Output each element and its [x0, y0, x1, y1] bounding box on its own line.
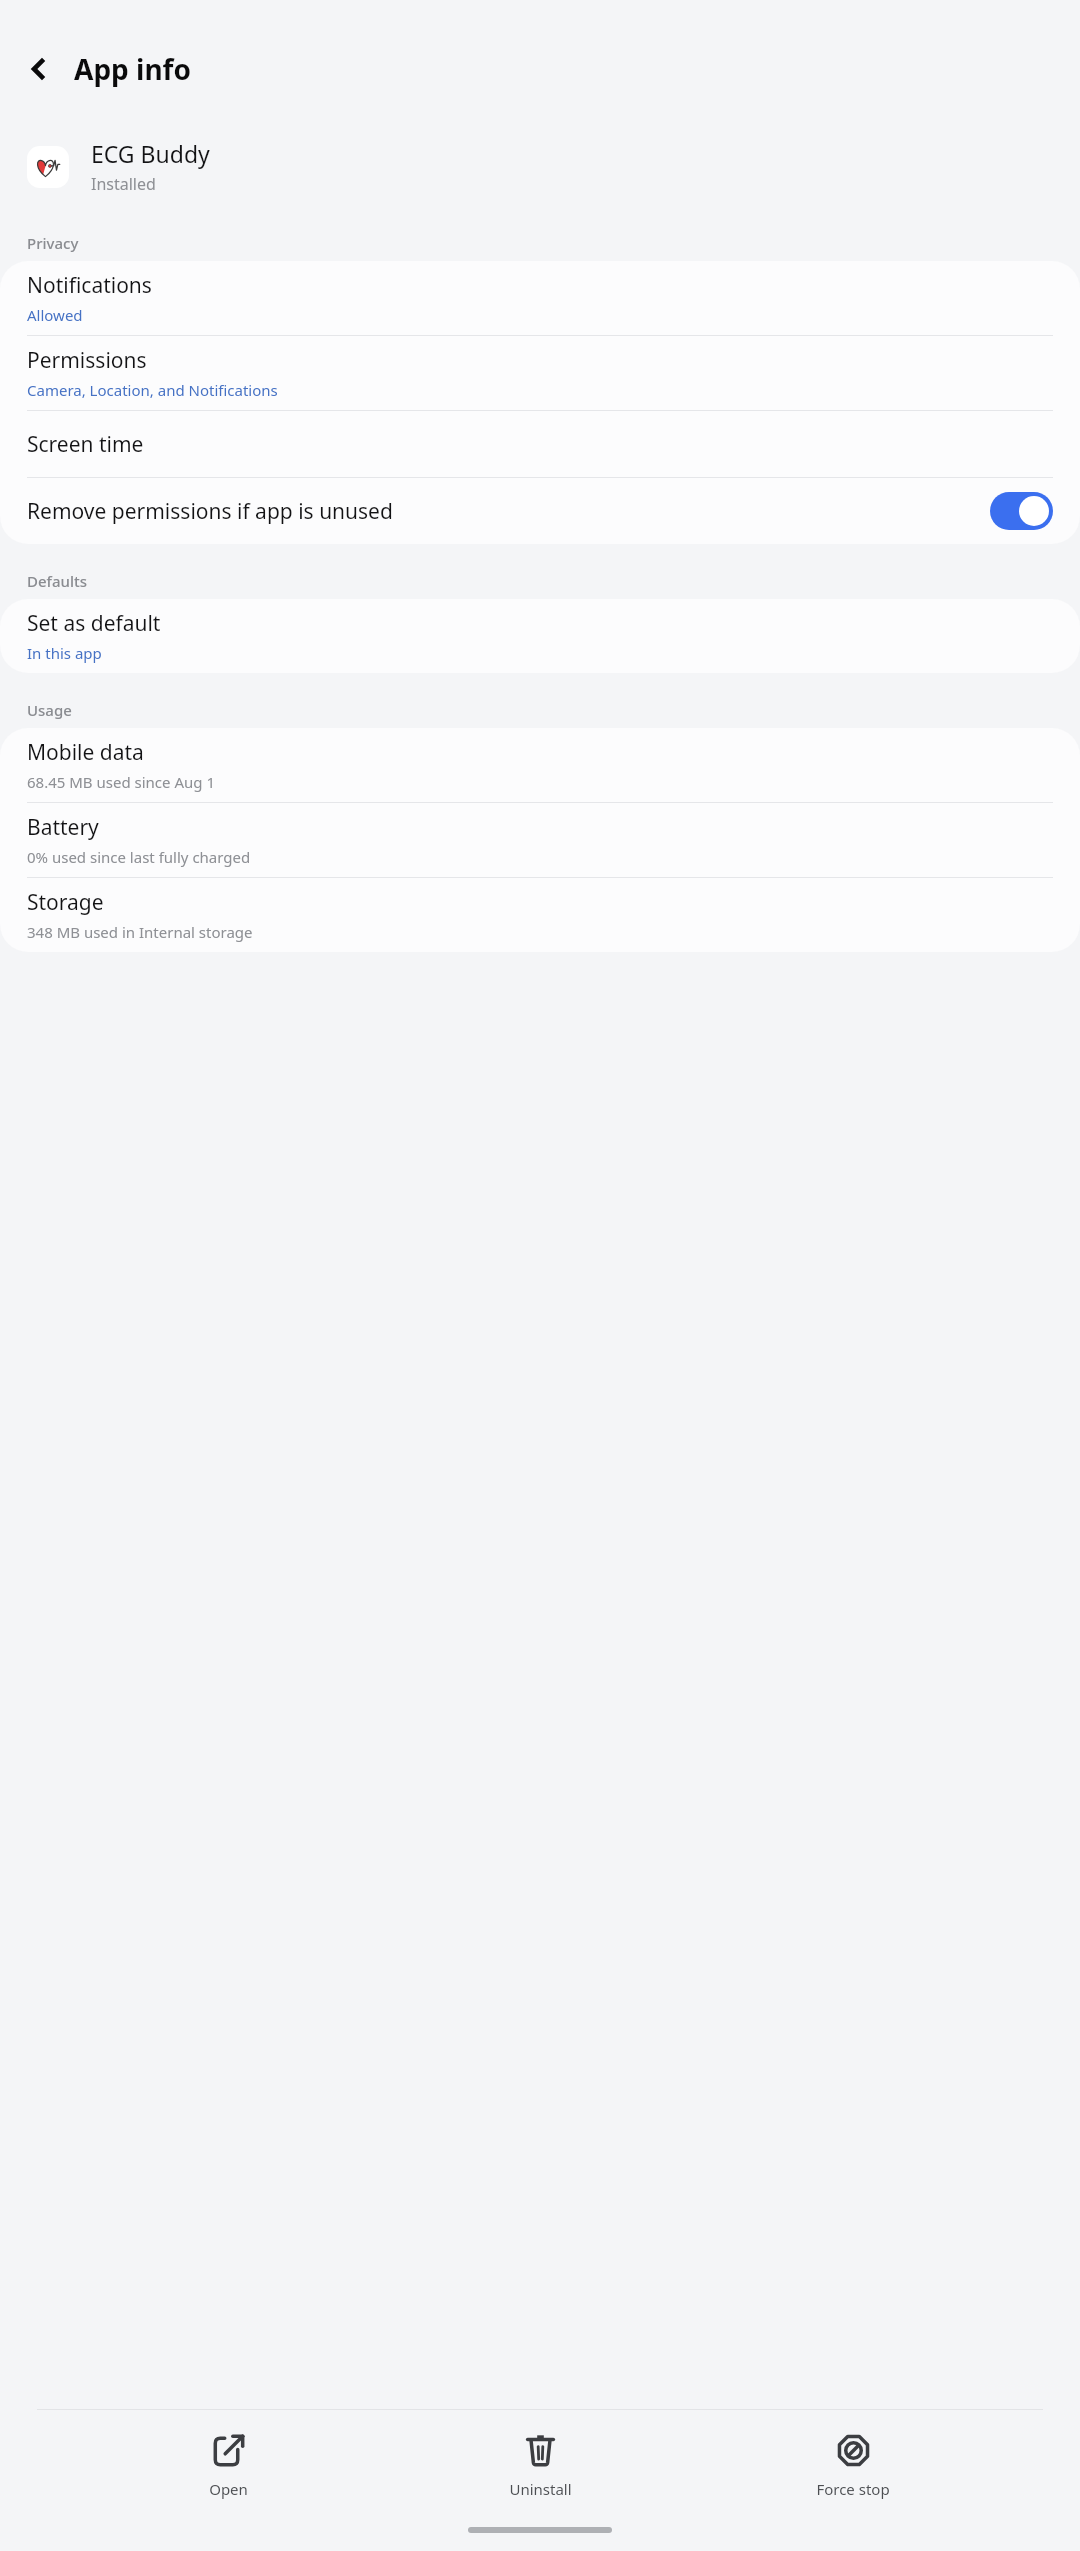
staticText: Battery: [27, 813, 99, 842]
staticText: Remove permissions if app is unused: [27, 497, 393, 526]
button[interactable]: Remove permissions if app is unused, on: [990, 492, 1053, 530]
staticText: Set as default: [27, 609, 161, 638]
staticText: 0% used since last fully charged: [27, 847, 251, 867]
staticText: 348 MB used in Internal storage: [27, 922, 253, 942]
button[interactable]: Permissions: [0, 336, 1080, 410]
staticText: App info: [74, 50, 191, 88]
button[interactable]: Screen time: [0, 411, 1080, 477]
staticText: Defaults: [27, 571, 88, 591]
staticText: Open: [209, 2479, 248, 2499]
staticText: Screen time: [27, 430, 144, 459]
button[interactable]: Uninstall: [455, 2430, 625, 2503]
staticText: Privacy: [27, 233, 79, 253]
button[interactable]: Back: [12, 41, 68, 97]
button[interactable]: Mobile data: [0, 728, 1080, 802]
staticText: ECG Buddy: [91, 138, 210, 169]
staticText: Uninstall: [509, 2479, 572, 2499]
button[interactable]: Notifications: [0, 261, 1080, 335]
staticText: Mobile data: [27, 738, 144, 767]
button[interactable]: ECG Buddy: [27, 138, 1080, 195]
staticText: Allowed: [27, 305, 83, 325]
button[interactable]: Battery: [0, 803, 1080, 877]
button[interactable]: Force stop: [768, 2430, 938, 2503]
staticText: 68.45 MB used since Aug 1: [27, 772, 215, 792]
staticText: Installed: [91, 173, 156, 195]
button[interactable]: Remove permissions if app is unused: [0, 478, 1080, 544]
staticText: Force stop: [816, 2479, 890, 2499]
staticText: Usage: [27, 700, 72, 720]
staticText: Permissions: [27, 346, 147, 375]
staticText: In this app: [27, 643, 102, 663]
button[interactable]: Set as default: [0, 599, 1080, 673]
staticText: Storage: [27, 888, 104, 917]
staticText: Notifications: [27, 271, 152, 300]
button[interactable]: Storage: [0, 878, 1080, 952]
staticText: Camera, Location, and Notifications: [27, 380, 278, 400]
button[interactable]: Open: [143, 2430, 313, 2503]
